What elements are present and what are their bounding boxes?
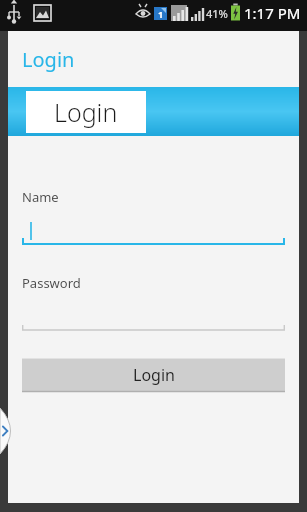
staticText: Login: [54, 95, 118, 129]
staticText: 41%: [206, 6, 228, 21]
button[interactable]: Login: [22, 358, 285, 392]
staticText: Password: [22, 274, 81, 292]
button[interactable]: Login: [8, 87, 299, 136]
staticText: 1:17 PM: [244, 3, 301, 23]
staticText: Login: [22, 46, 75, 73]
staticText: Login: [133, 364, 175, 386]
staticText: Name: [22, 188, 59, 206]
button[interactable]: [22, 306, 285, 332]
button[interactable]: Open drawer: [0, 408, 14, 454]
staticText: 1: [158, 8, 164, 19]
button[interactable]: [22, 220, 285, 246]
